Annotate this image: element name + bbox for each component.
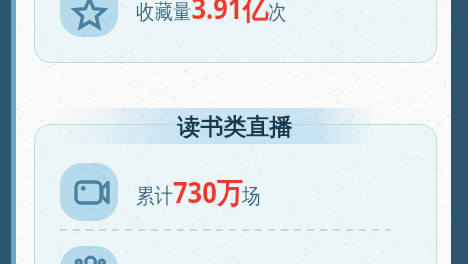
staticText: 读书类直播 <box>177 113 292 142</box>
staticText: 收藏量3.91亿次 <box>136 0 286 28</box>
staticText: 累计730万场 <box>136 172 261 212</box>
button[interactable]: Live video <box>60 163 118 221</box>
button[interactable]: Favorites <box>60 0 118 37</box>
button[interactable]: Favorites <box>34 0 437 63</box>
button[interactable]: Live video <box>34 124 437 264</box>
button[interactable]: 读书类直播 <box>0 108 468 144</box>
button[interactable]: Viewers <box>60 246 118 264</box>
